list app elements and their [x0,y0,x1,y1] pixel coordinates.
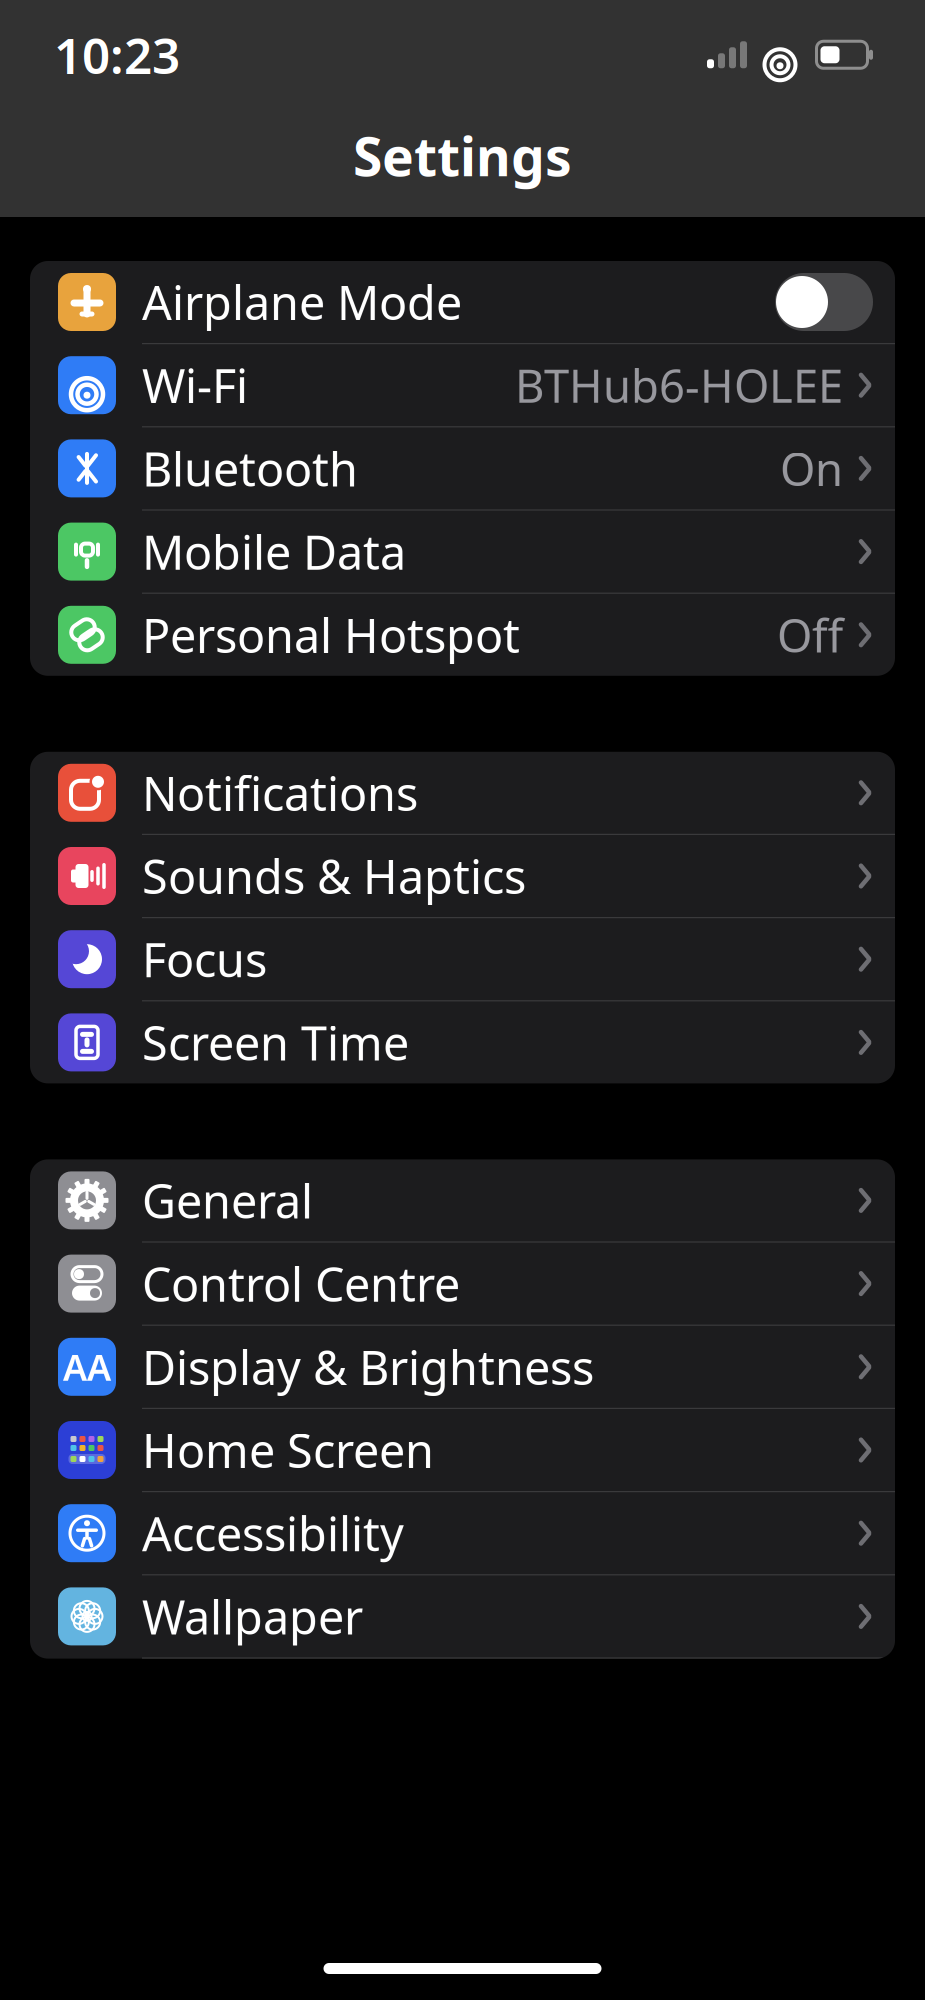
staticText: Accessibility [142,1502,404,1564]
staticText: General [142,1169,313,1231]
button[interactable]: Screen Time [30,1001,895,1083]
staticText: Off [777,605,843,665]
staticText: BTHub6-HOLEE [515,355,843,415]
staticText: Wi-Fi [142,354,248,416]
button[interactable]: AA [30,1326,895,1409]
staticText: Settings [353,120,572,191]
button[interactable]: Personal Hotspot [30,594,895,676]
button[interactable]: Airplane Mode [30,261,895,344]
staticText: 10:23 [54,22,180,87]
button[interactable]: Focus [30,918,895,1001]
staticText: Screen Time [142,1011,409,1073]
staticText: Mobile Data [142,521,406,583]
button[interactable]: Bluetooth [30,427,895,511]
staticText: Sounds & Haptics [142,845,526,907]
button[interactable]: Mobile Data [30,511,895,594]
button[interactable]: Wi-Fi [30,344,895,427]
staticText: Home Screen [142,1419,434,1481]
staticText: Notifications [142,762,418,824]
button[interactable]: Wallpaper [30,1575,895,1659]
staticText: On [780,438,843,498]
staticText: AA [63,1343,111,1391]
button[interactable]: Accessibility [30,1492,895,1575]
button[interactable]: Sounds & Haptics [30,835,895,918]
staticText: Display & Brightness [142,1336,594,1398]
staticText: Control Centre [142,1253,460,1315]
staticText: Airplane Mode [142,271,462,333]
staticText: Bluetooth [142,437,358,499]
button[interactable]: General [30,1159,895,1243]
button[interactable]: Control Centre [30,1243,895,1326]
staticText: Focus [142,928,267,990]
button[interactable]: Home Screen [30,1409,895,1492]
staticText: Personal Hotspot [142,604,520,666]
staticText: Wallpaper [142,1585,363,1647]
button[interactable]: Notifications [30,752,895,835]
